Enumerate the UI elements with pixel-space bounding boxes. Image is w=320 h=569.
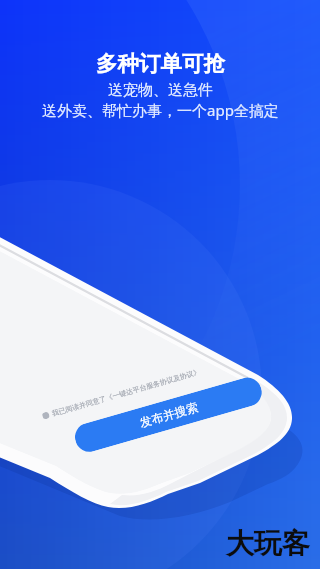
staticText: 送外卖、帮忙办事，一个app全搞定 (42, 100, 279, 120)
staticText: 我已阅读并同意了《一键达平台服务协议及协议》 (51, 367, 201, 418)
staticText: 送宠物、送急件 (108, 81, 213, 100)
staticText: 发布并搜索 (138, 399, 200, 430)
staticText: 多种订单可抢 (96, 50, 225, 77)
staticText: 大玩客 (226, 526, 310, 561)
button[interactable]: 发布并搜索 (72, 374, 265, 455)
